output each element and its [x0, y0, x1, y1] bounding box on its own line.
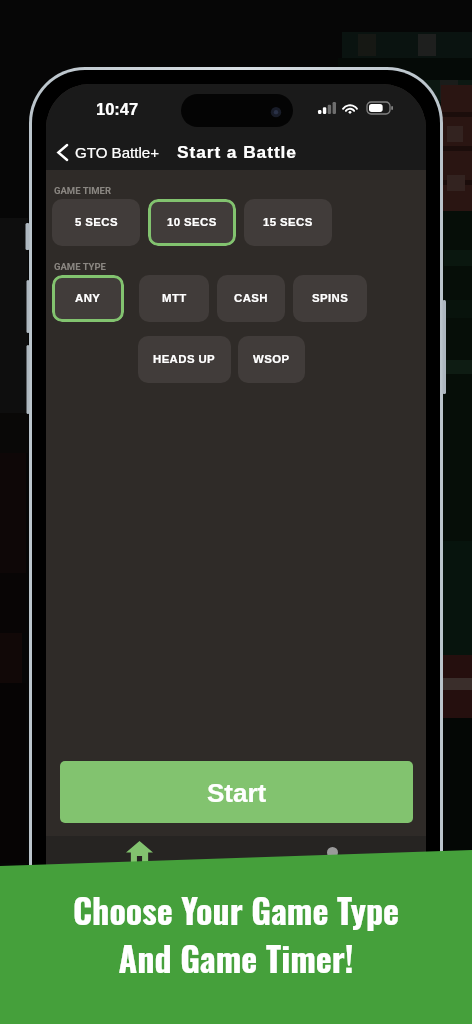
button[interactable]: 10 SECS: [148, 199, 236, 246]
staticText: Start: [207, 778, 267, 807]
staticText: 5 SECS: [75, 216, 118, 229]
staticText: GTO Battle+: [75, 144, 160, 161]
button[interactable]: CASH: [217, 275, 285, 322]
staticText: 10:47: [96, 100, 139, 118]
staticText: ANY: [75, 292, 101, 305]
button[interactable]: 5 SECS: [52, 199, 140, 246]
staticText: CASH: [234, 292, 268, 305]
staticText: SPINS: [312, 292, 349, 305]
staticText: Choose Your Game Type And Game Timer!: [0, 884, 472, 982]
staticText: 15 SECS: [263, 216, 313, 229]
staticText: 10 SECS: [167, 216, 217, 229]
button[interactable]: Start: [60, 761, 413, 823]
button[interactable]: Home: [113, 832, 165, 872]
staticText: GAME TYPE: [54, 261, 106, 272]
button[interactable]: HEADS UP: [138, 336, 231, 383]
button[interactable]: MTT: [139, 275, 209, 322]
button[interactable]: Profile: [306, 832, 358, 872]
staticText: WSOP: [253, 353, 290, 366]
button[interactable]: 15 SECS: [244, 199, 332, 246]
button[interactable]: WSOP: [238, 336, 305, 383]
staticText: MTT: [162, 292, 187, 305]
button[interactable]: ANY: [52, 275, 124, 322]
staticText: Start a Battle: [177, 142, 297, 161]
button[interactable]: GTO Battle+: [57, 137, 160, 167]
button[interactable]: SPINS: [293, 275, 367, 322]
staticText: GAME TIMER: [54, 185, 112, 196]
staticText: HEADS UP: [153, 353, 216, 366]
